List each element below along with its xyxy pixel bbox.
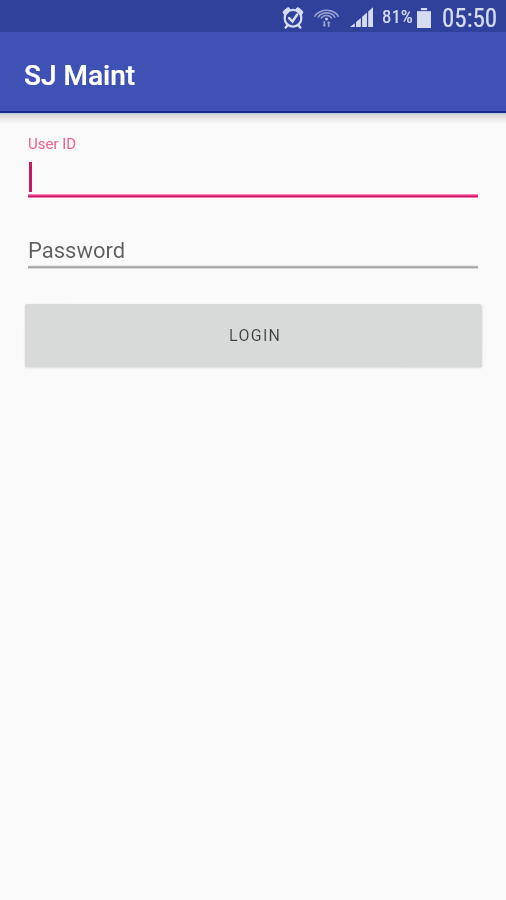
- other: Wi-Fi: [315, 5, 338, 29]
- button[interactable]: LOGIN: [25, 304, 481, 367]
- staticText: Password: [28, 238, 126, 261]
- staticText: User ID: [28, 135, 77, 153]
- other: Battery: [417, 6, 431, 28]
- other: Alarm set: [282, 5, 304, 28]
- staticText: 81%: [382, 5, 413, 27]
- staticText: 05:50: [442, 4, 498, 33]
- staticText: SJ Maint: [24, 59, 136, 92]
- staticText: LOGIN: [229, 326, 282, 345]
- other: Signal strength: [350, 6, 373, 27]
